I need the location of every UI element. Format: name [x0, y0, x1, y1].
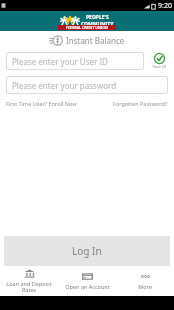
staticText: Please enter your password [12, 80, 117, 91]
staticText: First Time User? Enroll Now [6, 100, 77, 107]
staticText: Save ID [152, 64, 167, 69]
button[interactable]: Please enter your password [6, 76, 168, 94]
staticText: Please enter your User ID [12, 56, 108, 67]
staticText: PEOPLE'S [86, 14, 109, 21]
button[interactable]: Loan and Deposit Rates [0, 266, 58, 296]
staticText: COMMUNITY [81, 21, 114, 28]
staticText: More [138, 283, 152, 290]
button[interactable]: Please enter your User ID [6, 52, 144, 70]
staticText: FEDERAL CREDIT UNION [66, 25, 108, 30]
staticText: 9:20 [158, 1, 172, 11]
button[interactable]: Forgotten Password? [113, 100, 168, 107]
staticText: Instant Balance [66, 35, 125, 46]
staticText: Forgotten Password? [113, 100, 168, 107]
staticText: Log In [72, 244, 102, 258]
button[interactable]: More [116, 266, 174, 296]
staticText: Open an Account [65, 283, 110, 290]
staticText: Loan and Deposit Rates [0, 280, 58, 293]
button[interactable]: First Time User? Enroll Now [6, 100, 77, 107]
button[interactable]: Save ID [148, 53, 170, 69]
button[interactable]: Open an Account [58, 266, 116, 296]
button[interactable]: Log In [4, 236, 170, 266]
button[interactable]: Instant Balance [0, 31, 174, 49]
